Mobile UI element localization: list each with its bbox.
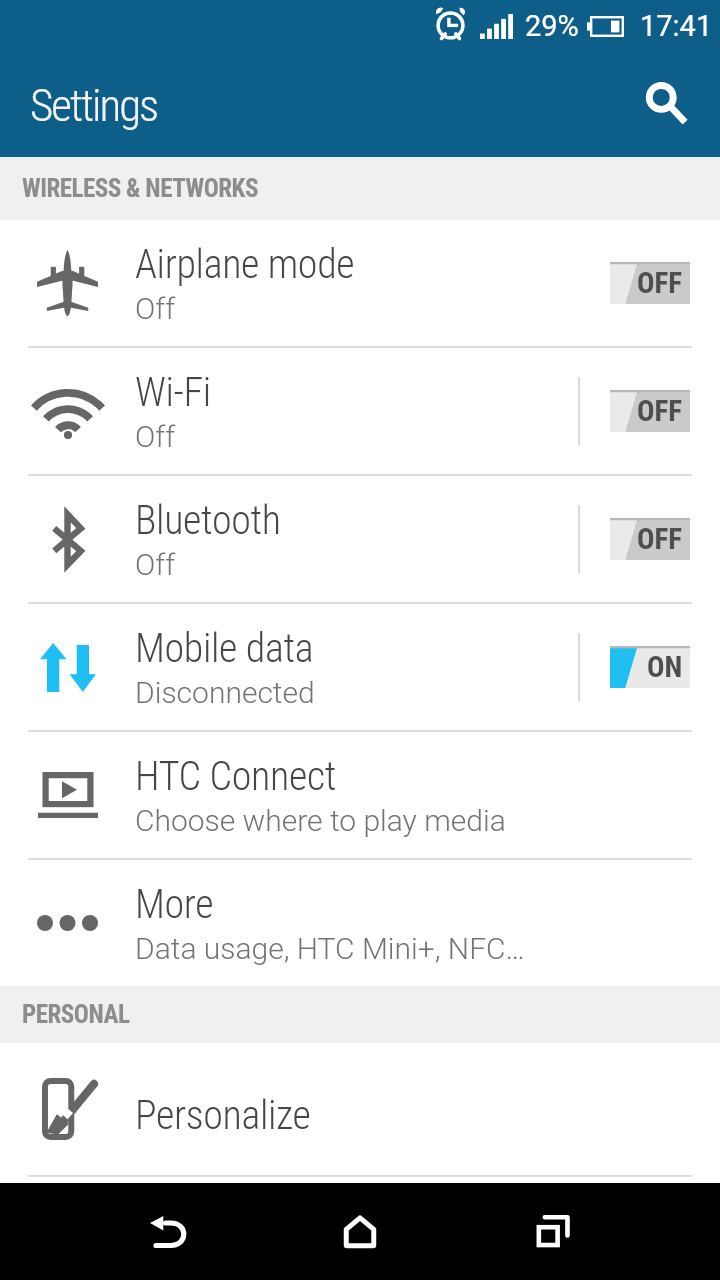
staticText: Off: [135, 419, 176, 454]
button[interactable]: Mobile data on: [610, 646, 690, 688]
button[interactable]: Off: [610, 390, 690, 432]
button[interactable]: Mobile data: [0, 604, 720, 730]
button[interactable]: Home: [264, 1183, 456, 1280]
button[interactable]: Wi-Fi: [0, 348, 720, 474]
button[interactable]: Personalize: [0, 1043, 720, 1175]
button[interactable]: More: [0, 860, 720, 986]
staticText: Disconnected: [135, 675, 315, 710]
staticText: Bluetooth: [135, 497, 281, 544]
button[interactable]: Recent apps: [456, 1183, 648, 1280]
staticText: Settings: [30, 79, 158, 132]
staticText: Choose where to play media: [135, 803, 506, 838]
staticText: WIRELESS & NETWORKS: [22, 174, 258, 203]
button[interactable]: Back: [72, 1183, 264, 1280]
staticText: OFF: [637, 394, 683, 428]
button[interactable]: Airplane mode: [0, 220, 720, 346]
staticText: HTC Connect: [135, 753, 336, 800]
staticText: OFF: [637, 266, 683, 300]
staticText: More: [135, 881, 214, 928]
button[interactable]: Off: [610, 518, 690, 560]
staticText: Data usage, HTC Mini+, NFC…: [135, 931, 525, 966]
button[interactable]: Off: [610, 262, 690, 304]
staticText: OFF: [637, 522, 683, 556]
button[interactable]: Search: [610, 52, 720, 157]
button[interactable]: HTC Connect: [0, 732, 720, 858]
staticText: ON: [647, 650, 683, 684]
staticText: Off: [135, 291, 176, 326]
button[interactable]: Bluetooth: [0, 476, 720, 602]
staticText: Airplane mode: [135, 241, 355, 288]
staticText: Mobile data: [135, 625, 314, 672]
staticText: 17:41: [640, 9, 713, 43]
staticText: Wi-Fi: [135, 369, 211, 416]
staticText: Personalize: [135, 1092, 311, 1139]
staticText: 29%: [525, 9, 579, 43]
staticText: Off: [135, 547, 176, 582]
staticText: PERSONAL: [22, 1000, 130, 1029]
